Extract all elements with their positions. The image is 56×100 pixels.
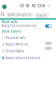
staticText: Edit: [47, 42, 49, 44]
staticText: Edit: [47, 47, 49, 49]
staticText: Reject all calls: [6, 36, 25, 40]
button[interactable]: More: [47, 3, 51, 8]
staticText: Accept Whitelist: [6, 43, 28, 46]
staticText: Accept phonebook only: [2, 24, 36, 27]
button[interactable]: Edit: [45, 42, 52, 45]
button[interactable]: Extensions: [37, 3, 41, 8]
button[interactable]: Search Google or type a URL: [6, 12, 33, 17]
button[interactable]: Discover: [35, 13, 48, 18]
button[interactable]: Current tab: [1, 3, 8, 11]
button[interactable]: Accept phonebook only: [45, 24, 51, 28]
button[interactable]: Downloads: [25, 3, 30, 8]
button[interactable]: Settings: [32, 3, 36, 8]
button[interactable]: History: [20, 3, 24, 8]
button[interactable]: Accept phonebook only: [2, 56, 56, 60]
staticText: Block calls: [2, 20, 17, 24]
staticText: Discover: [36, 14, 47, 17]
button[interactable]: Accept Whitelist: [2, 43, 56, 46]
button[interactable]: Edit: [45, 47, 52, 50]
button[interactable]: Block blacklist: [2, 50, 56, 53]
staticText: Accept phonebook only: [6, 56, 40, 60]
button[interactable]: Reject all calls: [2, 36, 56, 39]
staticText: Search Google or type a URL: [7, 13, 33, 16]
staticText: Block blacklist: [6, 49, 24, 53]
button[interactable]: Profile: [41, 3, 45, 8]
staticText: Block actions: [2, 30, 21, 33]
button[interactable]: Search: [1, 13, 5, 17]
